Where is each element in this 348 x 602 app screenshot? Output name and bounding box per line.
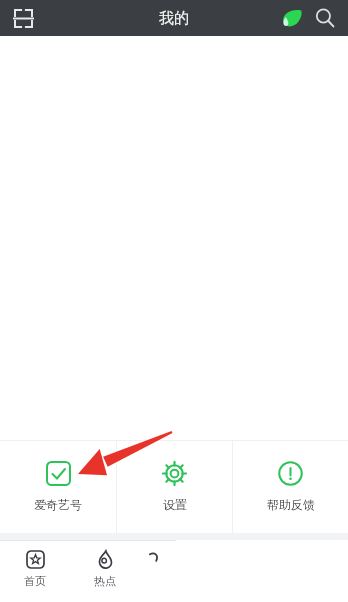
button[interactable]: Scan: [9, 4, 37, 32]
staticText: 首页: [24, 574, 46, 588]
staticText: 帮助反馈: [267, 497, 315, 512]
button[interactable]: 爱奇艺号: [0, 441, 116, 533]
staticText: 设置: [163, 497, 187, 512]
button[interactable]: 设置: [117, 441, 232, 533]
button[interactable]: 首页: [0, 541, 70, 602]
button[interactable]: 热点: [70, 541, 140, 602]
staticText: 爱奇艺号: [34, 497, 82, 512]
button[interactable]: Search: [308, 1, 342, 35]
staticText: 热点: [94, 574, 116, 588]
staticText: 我的: [159, 9, 189, 28]
button[interactable]: Eco mode: [274, 1, 308, 35]
button[interactable]: 帮助反馈: [233, 441, 348, 533]
